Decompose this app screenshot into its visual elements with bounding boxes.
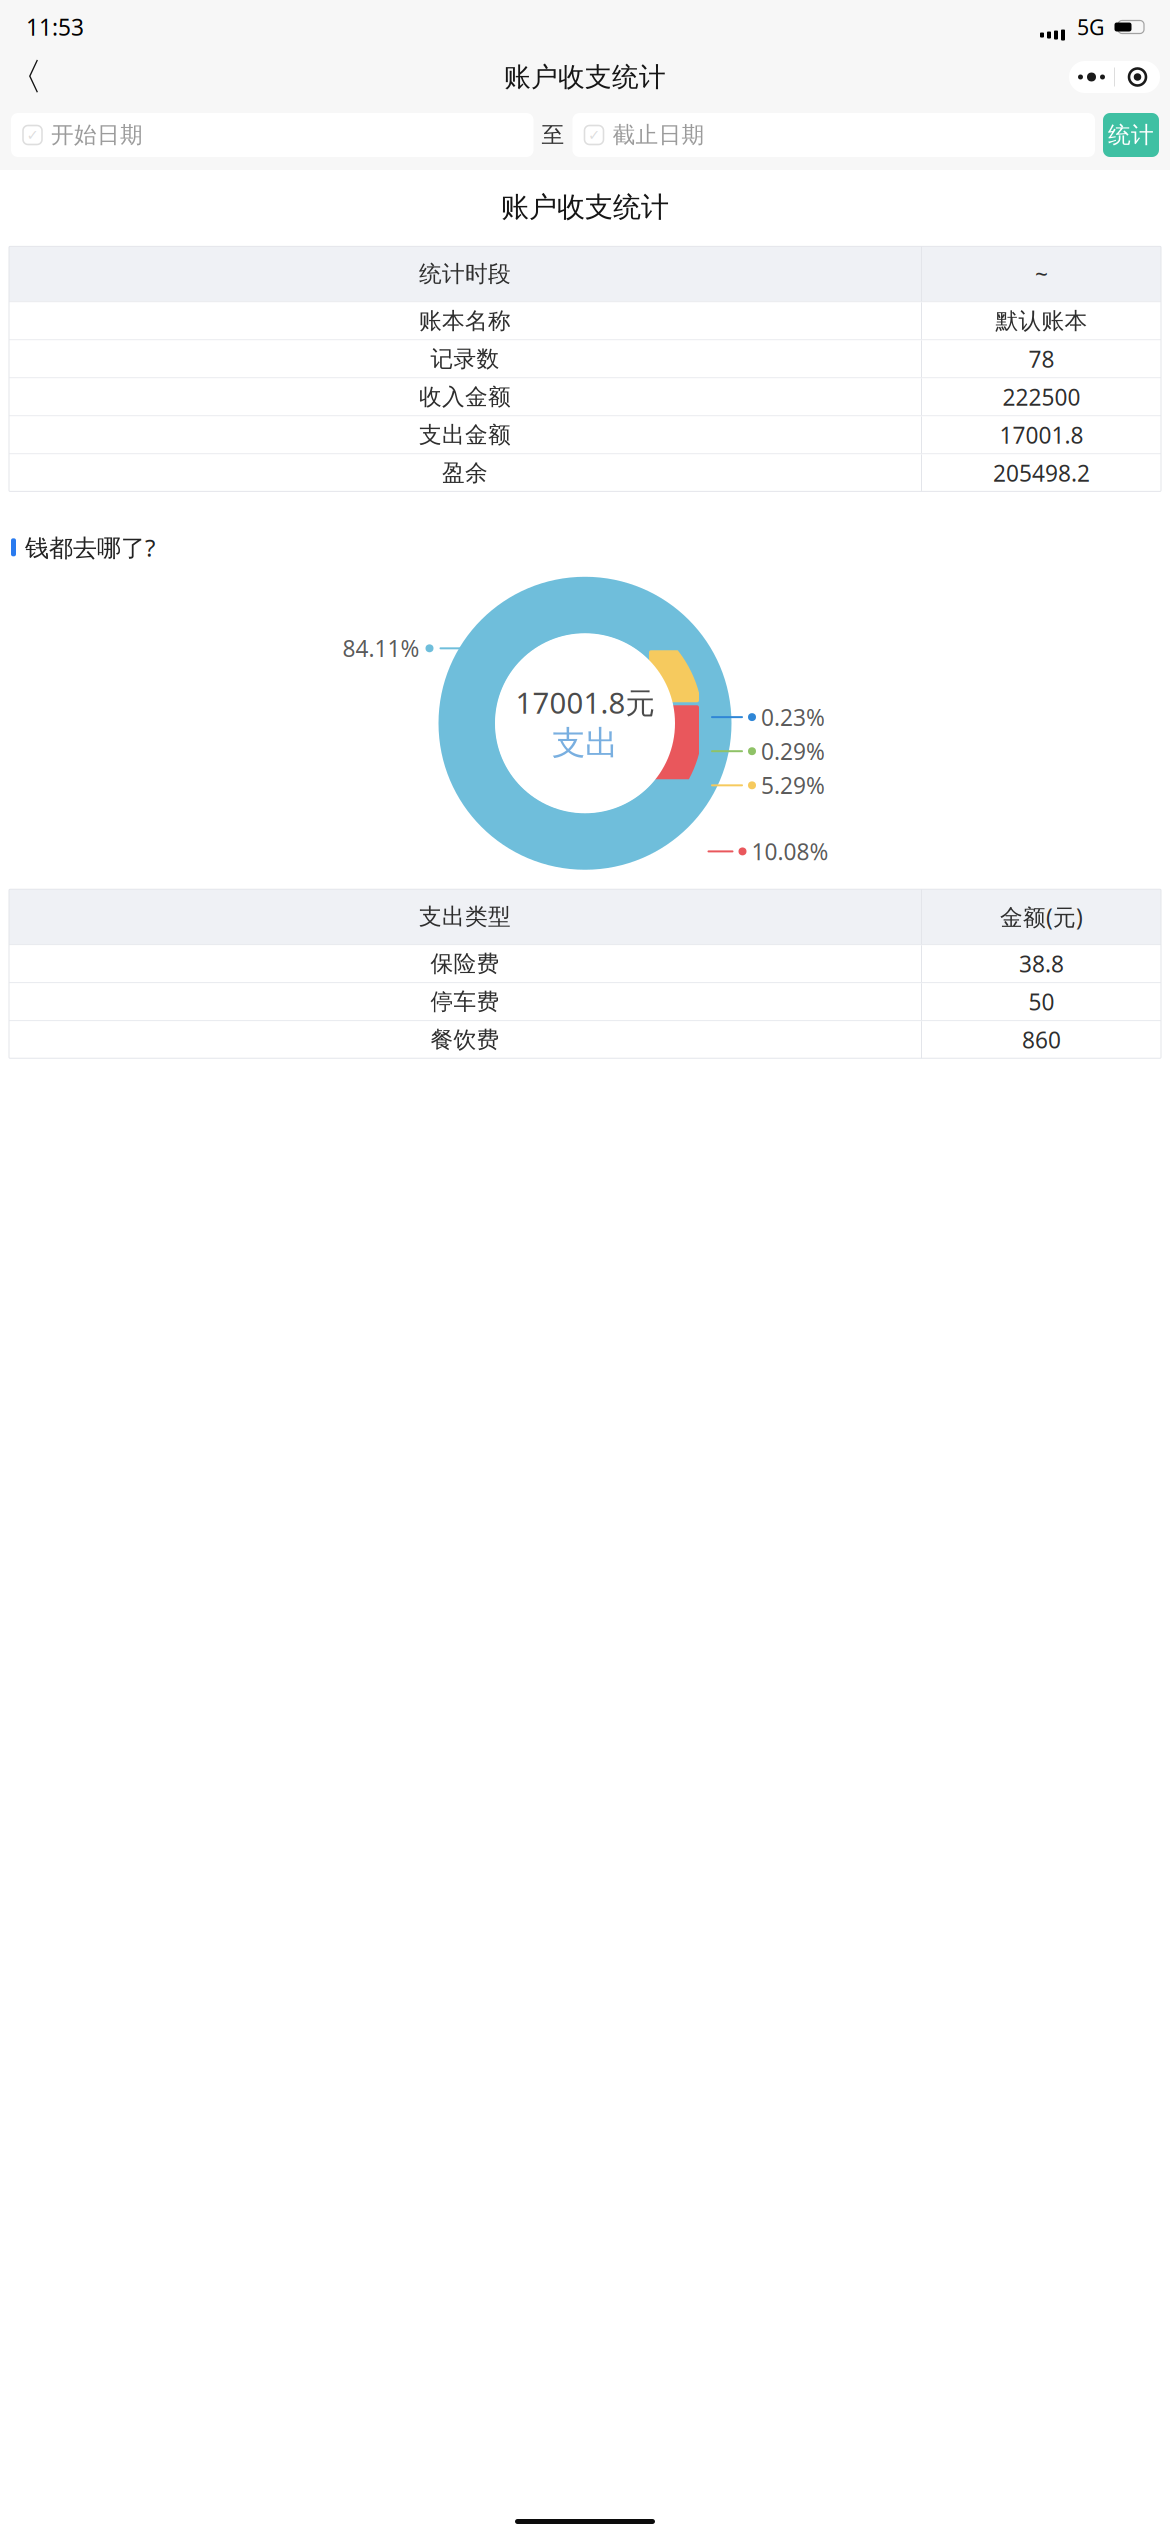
button[interactable]: Close mini program [1115,61,1160,93]
staticText: 账户收支统计 [501,190,669,224]
staticText: 5.29% [761,770,825,800]
staticText: 统计时段 [419,260,511,288]
staticText: 支出类型 [419,903,511,931]
staticText: ✓ [26,127,38,143]
staticText: 金额(元) [1000,902,1083,932]
staticText: 支出金额 [419,421,511,449]
staticText: 账本名称 [419,307,511,335]
staticText: 0.29% [761,736,825,766]
staticText: 5G [1077,13,1105,41]
staticText: 11:53 [26,12,84,42]
button[interactable]: ✓ [11,113,533,157]
staticText: 钱都去哪了? [25,531,155,563]
staticText: 78 [1028,344,1054,374]
button[interactable]: 统计 [1103,113,1159,157]
staticText: 支出 [552,723,618,764]
staticText: 记录数 [430,345,499,373]
staticText: 至 [541,121,564,149]
staticText: 10.08% [751,836,828,866]
button[interactable]: Back [0,55,48,99]
staticText: 收入金额 [419,383,511,411]
staticText: 84.11% [342,633,419,663]
staticText: 17001.8 [999,420,1083,450]
staticText: 账户收支统计 [504,61,666,93]
staticText: ✓ [588,127,600,143]
staticText: 截止日期 [612,121,704,149]
staticText: 0.23% [761,702,825,732]
staticText: ~ [1035,259,1048,289]
staticText: 开始日期 [51,121,143,149]
staticText: 205498.2 [993,458,1090,488]
staticText: 餐饮费 [430,1026,499,1054]
button[interactable]: More [1069,61,1114,93]
staticText: 盈余 [442,459,488,487]
staticText: 38.8 [1019,949,1064,979]
staticText: 保险费 [430,950,499,978]
staticText: 50 [1028,987,1054,1017]
staticText: 〈 [5,54,42,100]
staticText: 统计 [1108,121,1154,149]
staticText: 860 [1022,1025,1061,1055]
staticText: 默认账本 [995,307,1087,335]
button[interactable]: ✓ [572,113,1095,157]
staticText: 停车费 [430,988,499,1016]
staticText: 17001.8元 [515,683,654,722]
staticText: 222500 [1002,382,1080,412]
